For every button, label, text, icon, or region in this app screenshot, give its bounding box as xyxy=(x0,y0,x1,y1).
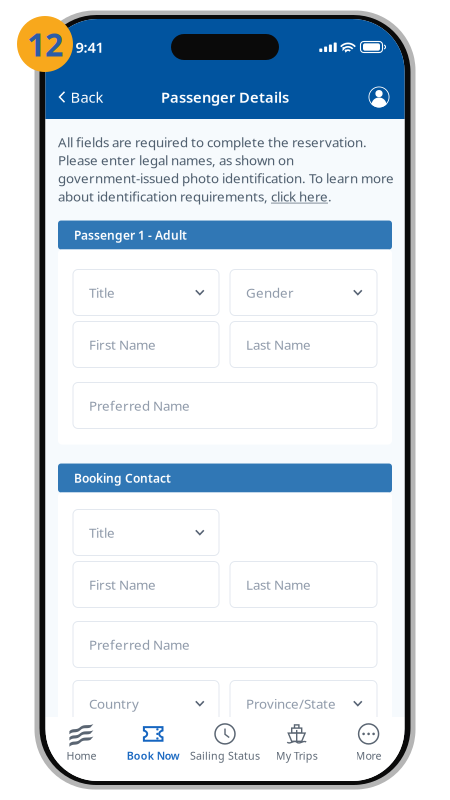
staticText: First Name xyxy=(89,336,156,353)
button[interactable]: Last Name xyxy=(230,321,377,367)
staticText: Gender xyxy=(246,284,294,301)
staticText: Home xyxy=(66,748,96,763)
button[interactable]: More xyxy=(333,719,404,767)
staticText: Back xyxy=(70,87,103,107)
button[interactable]: Account xyxy=(368,81,404,113)
button[interactable]: Preferred Name xyxy=(73,621,377,667)
staticText: about identification requirements, xyxy=(58,187,271,205)
button[interactable]: My Trips xyxy=(261,719,333,767)
staticText: 9:41 xyxy=(75,37,103,57)
staticText: Booking Contact xyxy=(74,470,171,486)
button[interactable]: Province/State xyxy=(230,680,377,726)
button[interactable]: Country xyxy=(73,680,219,726)
button[interactable]: Sailing Status xyxy=(189,719,261,767)
button[interactable]: Home xyxy=(45,719,117,767)
staticText: Last Name xyxy=(246,336,311,353)
staticText: Sailing Status xyxy=(190,748,260,763)
staticText: Last Name xyxy=(246,576,311,593)
staticText: Province/State xyxy=(246,695,336,712)
staticText: Passenger 1 - Adult xyxy=(74,227,187,243)
button[interactable]: Gender xyxy=(230,269,377,315)
button[interactable]: Title xyxy=(73,509,219,555)
staticText: All fields are required to complete the … xyxy=(58,133,367,151)
staticText: Country xyxy=(89,695,139,712)
staticText: Please enter legal names, as shown on xyxy=(58,151,294,169)
staticText: Preferred Name xyxy=(89,397,190,414)
button[interactable]: Last Name xyxy=(230,561,377,607)
staticText: First Name xyxy=(89,576,156,593)
button[interactable]: Book Now xyxy=(117,719,189,767)
staticText: My Trips xyxy=(276,748,318,763)
button[interactable]: click here xyxy=(271,187,328,205)
staticText: 12 xyxy=(27,23,63,65)
staticText: Passenger Details xyxy=(161,87,289,107)
staticText: Title xyxy=(89,284,115,301)
staticText: Title xyxy=(89,524,115,541)
staticText: Book Now xyxy=(127,748,180,763)
staticText: . xyxy=(328,187,332,205)
button[interactable]: Back xyxy=(45,81,103,113)
staticText: click here xyxy=(271,187,328,205)
button[interactable]: First Name xyxy=(73,561,219,607)
staticText: More xyxy=(356,748,382,763)
button[interactable]: Preferred Name xyxy=(73,382,377,428)
staticText: government-issued photo identification. … xyxy=(58,169,394,187)
button[interactable]: Title xyxy=(73,269,219,315)
button[interactable]: First Name xyxy=(73,321,219,367)
staticText: Preferred Name xyxy=(89,636,190,653)
